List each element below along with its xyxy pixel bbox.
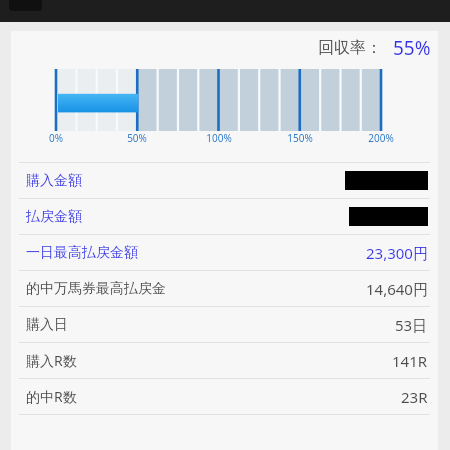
staticText: 購入R数 [26,351,77,370]
staticText: 回収率： [318,38,382,58]
button[interactable]: 一日最高払戻金額 [11,235,438,270]
button[interactable]: 的中R数 [11,379,438,414]
staticText: 100% [197,131,241,145]
staticText: 一日最高払戻金額 [26,244,138,262]
staticText: 0% [34,131,78,145]
staticText: 150% [278,131,322,145]
staticText: 的中万馬券最高払戻金 [26,280,166,298]
button[interactable]: 購入日 [11,307,438,342]
staticText: 23R [401,387,428,407]
staticText: 141R [392,351,428,371]
button[interactable]: 購入R数 [11,343,438,378]
staticText: 購入金額 [26,172,82,190]
staticText: 的中R数 [26,387,77,406]
staticText: 購入日 [26,316,68,334]
staticText: 払戻金額 [26,208,82,226]
button[interactable]: 的中万馬券最高払戻金 [11,271,438,306]
staticText: 200% [359,131,403,145]
staticText: 53日 [395,315,428,335]
staticText: 55% [393,35,431,61]
button[interactable]: 購入金額 [11,163,438,198]
staticText: 14,640円 [366,279,428,299]
staticText: 50% [115,131,159,145]
button[interactable]: 払戻金額 [11,199,438,234]
staticText: 23,300円 [366,243,428,263]
